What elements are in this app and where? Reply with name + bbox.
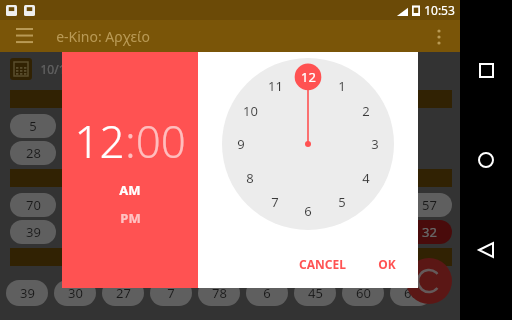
button[interactable]: PM	[110, 207, 151, 229]
button[interactable]: Menu	[8, 20, 40, 52]
staticText: 10/1	[40, 61, 66, 77]
button[interactable]: 39	[10, 220, 56, 244]
button[interactable]: Clock face	[222, 58, 394, 230]
staticText: 12	[301, 68, 316, 86]
button[interactable]: CANCEL	[291, 250, 354, 278]
button[interactable]: 27	[102, 280, 144, 306]
button[interactable]: 28	[10, 141, 56, 165]
button[interactable]: 6	[246, 280, 288, 306]
staticText: 7	[271, 193, 279, 211]
button[interactable]: 30	[54, 280, 96, 306]
staticText: 32	[422, 223, 437, 241]
button[interactable]: 68	[390, 280, 432, 306]
staticText: 30	[68, 284, 83, 302]
button[interactable]: Home	[466, 140, 506, 180]
button[interactable]: Refresh	[406, 258, 452, 304]
staticText: 7	[167, 284, 175, 302]
button[interactable]: 70	[10, 193, 56, 217]
staticText: 10	[243, 102, 258, 120]
button[interactable]: OK	[370, 250, 404, 278]
button[interactable]: More options	[424, 21, 454, 51]
staticText: PM	[120, 209, 141, 227]
button[interactable]: 60	[342, 280, 384, 306]
staticText: 8	[246, 169, 254, 187]
button[interactable]: 45	[294, 280, 336, 306]
staticText: OK	[378, 256, 396, 272]
button[interactable]: 32	[406, 220, 452, 244]
staticText: 5	[338, 193, 346, 211]
staticText: 6	[304, 202, 312, 220]
staticText: 60	[356, 284, 371, 302]
staticText: 12	[74, 111, 125, 171]
staticText: 2	[362, 102, 370, 120]
staticText: 6	[263, 284, 271, 302]
staticText: 4	[362, 169, 370, 187]
staticText: 10:53	[424, 2, 455, 18]
button[interactable]: 5	[10, 114, 56, 138]
button[interactable]: Recent apps	[466, 50, 506, 90]
button[interactable]: 57	[406, 193, 452, 217]
staticText: 39	[20, 284, 35, 302]
button[interactable]: AM	[109, 179, 151, 201]
staticText: e-Kino: Αρχείο	[56, 27, 150, 46]
staticText: 70	[26, 196, 41, 214]
staticText: 78	[212, 284, 227, 302]
staticText: 57	[422, 196, 437, 214]
staticText: 5	[29, 117, 37, 135]
staticText: 3	[371, 135, 379, 153]
staticText: :00	[125, 111, 186, 171]
button[interactable]: 7	[150, 280, 192, 306]
staticText: 39	[26, 223, 41, 241]
staticText: AM	[119, 181, 141, 199]
button[interactable]: 39	[6, 280, 48, 306]
staticText: 1	[338, 77, 346, 95]
staticText: 9	[237, 135, 245, 153]
staticText: 68	[404, 284, 419, 302]
button[interactable]: Back	[466, 230, 506, 270]
staticText: 28	[26, 144, 41, 162]
staticText: CANCEL	[299, 256, 346, 272]
staticText: 45	[308, 284, 323, 302]
staticText: 27	[116, 284, 131, 302]
staticText: 11	[268, 77, 283, 95]
button[interactable]: 78	[198, 280, 240, 306]
